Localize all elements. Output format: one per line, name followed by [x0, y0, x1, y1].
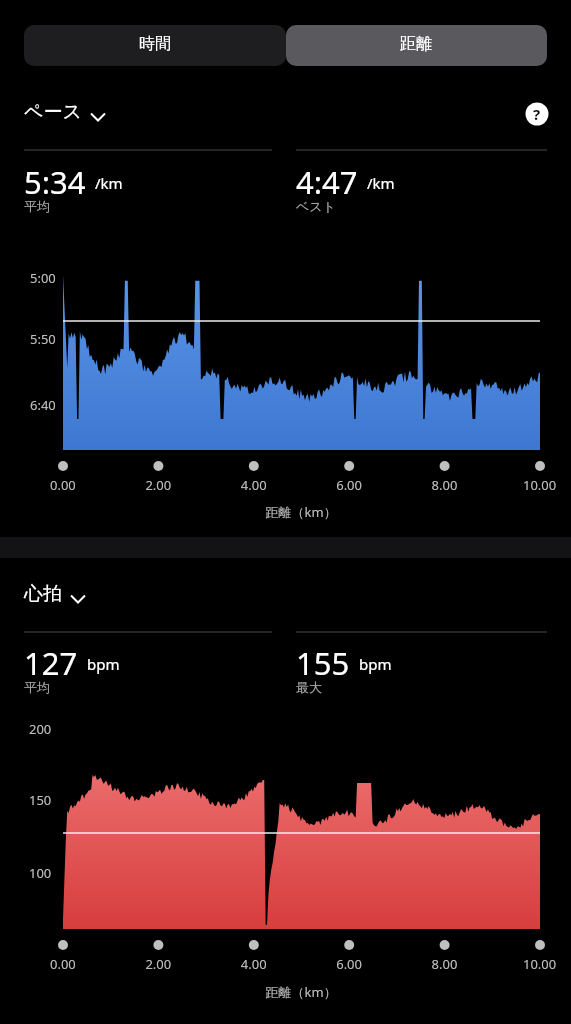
button[interactable] — [20, 578, 130, 616]
button[interactable]: Help — [515, 92, 559, 136]
button[interactable] — [286, 25, 547, 66]
button[interactable] — [20, 96, 150, 134]
button[interactable] — [24, 25, 286, 66]
